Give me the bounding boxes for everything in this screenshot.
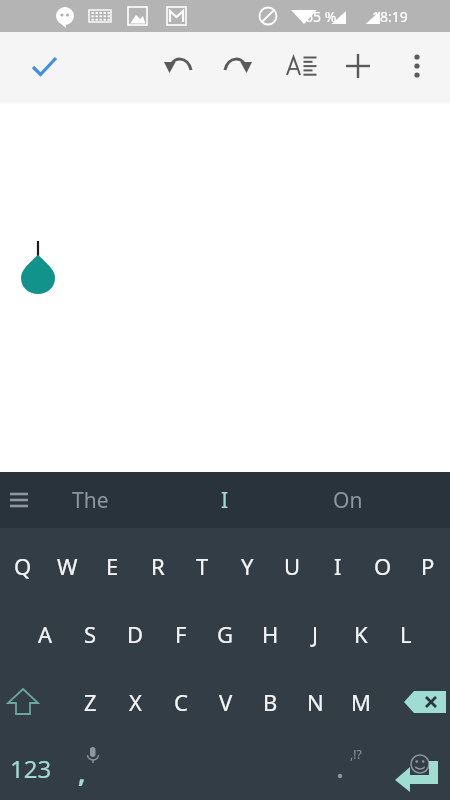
staticText: D — [127, 619, 144, 649]
button[interactable]: L — [383, 600, 428, 668]
button[interactable]: G — [203, 600, 248, 668]
staticText: The — [72, 486, 109, 515]
button[interactable]: Period, symbols — [322, 736, 374, 800]
button[interactable]: I — [165, 472, 285, 528]
button[interactable]: C — [158, 668, 203, 736]
button[interactable]: V — [203, 668, 248, 736]
button[interactable]: Done — [20, 42, 68, 90]
staticText: I — [334, 551, 342, 581]
staticText: S — [84, 619, 97, 649]
button[interactable]: On — [288, 472, 408, 528]
staticText: 65 % — [305, 7, 337, 26]
staticText: Q — [14, 551, 32, 581]
staticText: M — [351, 687, 371, 717]
button[interactable]: T — [180, 532, 225, 600]
staticText: N — [307, 687, 324, 717]
button[interactable]: R — [135, 532, 180, 600]
staticText: A — [38, 619, 53, 649]
button[interactable]: Comma, voice input — [62, 736, 114, 800]
button[interactable]: P — [405, 532, 450, 600]
staticText: ,!? — [350, 746, 362, 762]
button[interactable]: Undo — [157, 44, 201, 88]
staticText: C — [174, 687, 188, 717]
staticText: U — [284, 551, 301, 581]
staticText: T — [196, 551, 209, 581]
staticText: I — [221, 486, 229, 515]
button[interactable]: Emoji — [398, 753, 442, 783]
button[interactable]: N — [293, 668, 338, 736]
staticText: Z — [84, 687, 97, 717]
button[interactable]: Enter — [384, 754, 450, 800]
button[interactable]: X — [113, 668, 158, 736]
staticText: Y — [241, 551, 254, 581]
staticText: B — [263, 687, 278, 717]
staticText: L — [400, 619, 412, 649]
button[interactable]: I — [315, 532, 360, 600]
button[interactable]: S — [68, 600, 113, 668]
button[interactable]: Formatting — [278, 44, 322, 88]
button[interactable]: A — [23, 600, 68, 668]
button[interactable]: More options — [395, 44, 439, 88]
button[interactable]: M — [338, 668, 383, 736]
button[interactable]: Shift — [0, 668, 46, 736]
button[interactable]: B — [248, 668, 293, 736]
button[interactable]: E — [90, 532, 135, 600]
staticText: V — [219, 687, 233, 717]
button[interactable]: J — [293, 600, 338, 668]
staticText: , — [78, 755, 86, 790]
staticText: W — [57, 551, 78, 581]
button[interactable]: Backspace — [398, 668, 450, 736]
button[interactable]: Add — [336, 44, 380, 88]
button[interactable]: Y — [225, 532, 270, 600]
button[interactable]: U — [270, 532, 315, 600]
button[interactable]: Redo — [215, 44, 259, 88]
staticText: J — [312, 619, 319, 649]
staticText: X — [129, 687, 142, 717]
staticText: On — [333, 486, 363, 515]
staticText: E — [106, 551, 119, 581]
staticText: G — [217, 619, 234, 649]
button[interactable]: The — [30, 472, 150, 528]
staticText: H — [262, 619, 279, 649]
staticText: P — [421, 551, 435, 581]
button[interactable]: F — [158, 600, 203, 668]
button[interactable]: W — [45, 532, 90, 600]
button[interactable]: 123 — [0, 736, 62, 800]
button[interactable]: Q — [0, 532, 45, 600]
staticText: 18:19 — [372, 7, 408, 26]
button[interactable]: K — [338, 600, 383, 668]
button[interactable]: D — [113, 600, 158, 668]
staticText: F — [175, 619, 187, 649]
button[interactable]: O — [360, 532, 405, 600]
button[interactable]: Z — [68, 668, 113, 736]
staticText: R — [151, 551, 165, 581]
staticText: K — [354, 619, 368, 649]
staticText: O — [374, 551, 392, 581]
button[interactable]: H — [248, 600, 293, 668]
button[interactable]: Keyboard menu — [0, 481, 38, 519]
staticText: 123 — [10, 752, 52, 785]
